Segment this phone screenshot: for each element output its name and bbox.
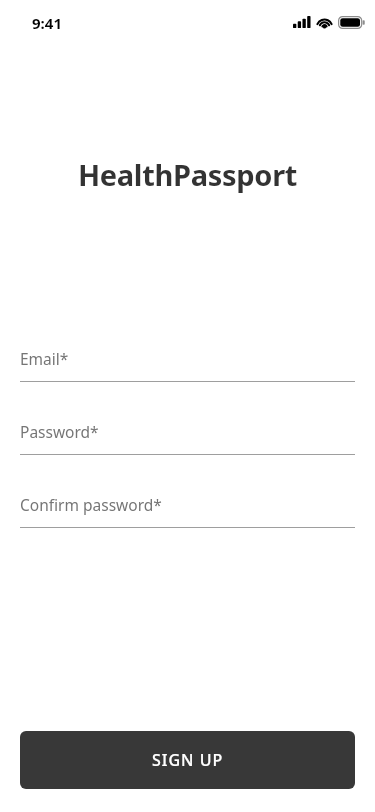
- staticText: 9:41: [32, 13, 62, 33]
- button[interactable]: Confirm password*: [20, 494, 355, 528]
- staticText: Password*: [20, 421, 99, 442]
- staticText: HealthPassport: [0, 155, 375, 194]
- button[interactable]: Email*: [20, 348, 355, 382]
- button[interactable]: SIGN UP: [20, 731, 355, 789]
- staticText: Email*: [20, 348, 69, 369]
- staticText: Confirm password*: [20, 494, 162, 515]
- staticText: SIGN UP: [152, 749, 224, 771]
- button[interactable]: Password*: [20, 421, 355, 455]
